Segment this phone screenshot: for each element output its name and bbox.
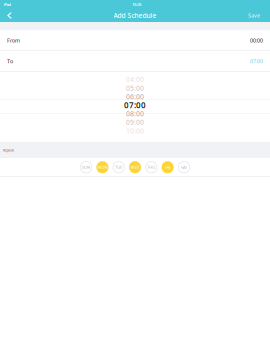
staticText: FRI	[165, 165, 170, 170]
staticText: iPad	[3, 2, 11, 7]
button[interactable]: To	[0, 51, 270, 71]
button[interactable]: MON	[97, 161, 108, 173]
button[interactable]: Save	[243, 9, 265, 22]
button[interactable]: From	[0, 30, 270, 50]
staticText: 07:00	[250, 58, 263, 65]
staticText: THU	[147, 165, 155, 170]
staticText: 04:00	[126, 75, 144, 84]
staticText: 07:00	[124, 100, 146, 110]
staticText: From	[7, 37, 20, 44]
staticText: WED	[130, 165, 139, 170]
staticText: Repeat	[3, 147, 14, 153]
staticText: 00:00	[250, 37, 263, 44]
button[interactable]: SAT	[178, 161, 190, 173]
staticText: Save	[248, 12, 260, 19]
button[interactable]: TUE	[113, 161, 124, 173]
staticText: 16:35	[132, 2, 141, 7]
staticText: 08:00	[126, 109, 144, 118]
button[interactable]: Back	[2, 9, 16, 22]
button[interactable]: WED	[129, 161, 141, 173]
button[interactable]: FRI	[162, 161, 173, 173]
staticText: 06:00	[126, 92, 144, 101]
staticText: SUN	[82, 165, 90, 170]
staticText: 05:00	[126, 84, 144, 92]
staticText: 10:00	[126, 126, 144, 135]
staticText: MON	[97, 165, 107, 170]
staticText: 09:00	[126, 118, 144, 127]
button[interactable]: THU	[146, 161, 157, 173]
staticText: Add Schedule	[113, 11, 156, 20]
staticText: To	[7, 58, 13, 65]
staticText: TUE	[115, 165, 122, 170]
button[interactable]: SUN	[80, 161, 92, 173]
staticText: SAT	[181, 165, 187, 170]
